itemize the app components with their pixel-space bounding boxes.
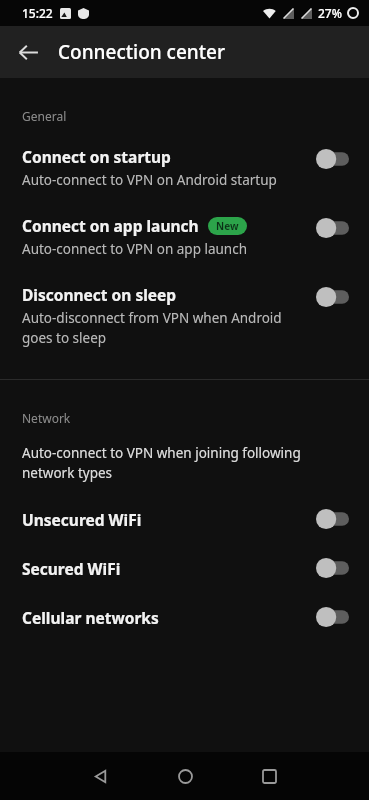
staticText: Disconnect on sleep [22,284,177,305]
staticText: Network [22,410,71,426]
staticText: Auto-connect to VPN on app launch [22,240,248,258]
button[interactable]: Toggle [315,557,349,579]
button[interactable]: Toggle [315,217,349,239]
button[interactable]: Back [8,32,48,72]
button[interactable]: Connect on startup [0,146,369,189]
button[interactable]: Back [80,756,120,796]
button[interactable]: Disconnect on sleep [0,284,369,347]
staticText: Auto-connect to VPN on Android startup [22,171,277,189]
staticText: 27% [318,5,342,21]
button[interactable]: Toggle [315,508,349,530]
button[interactable]: Unsecured WiFi [0,508,369,530]
staticText: Cellular networks [22,607,315,628]
staticText: New [216,219,239,233]
button[interactable]: Home [165,756,205,796]
button[interactable]: Toggle [315,606,349,628]
button[interactable]: Toggle [315,148,349,170]
staticText: Connect on startup [22,146,171,167]
staticText: Unsecured WiFi [22,509,315,530]
staticText: General [22,108,67,124]
button[interactable]: Cellular networks [0,606,369,628]
staticText: Connect on app launch [22,215,199,236]
staticText: Secured WiFi [22,558,315,579]
button[interactable]: Recent apps [249,756,289,796]
staticText: 15:22 [22,5,53,21]
staticText: Auto-connect to VPN when joining followi… [22,444,343,482]
button[interactable]: Connect on app launch [0,215,369,258]
button[interactable]: Toggle [315,286,349,308]
button[interactable]: Secured WiFi [0,557,369,579]
staticText: Connection center [58,39,225,65]
staticText: Auto-disconnect from VPN when Android go… [22,309,305,347]
